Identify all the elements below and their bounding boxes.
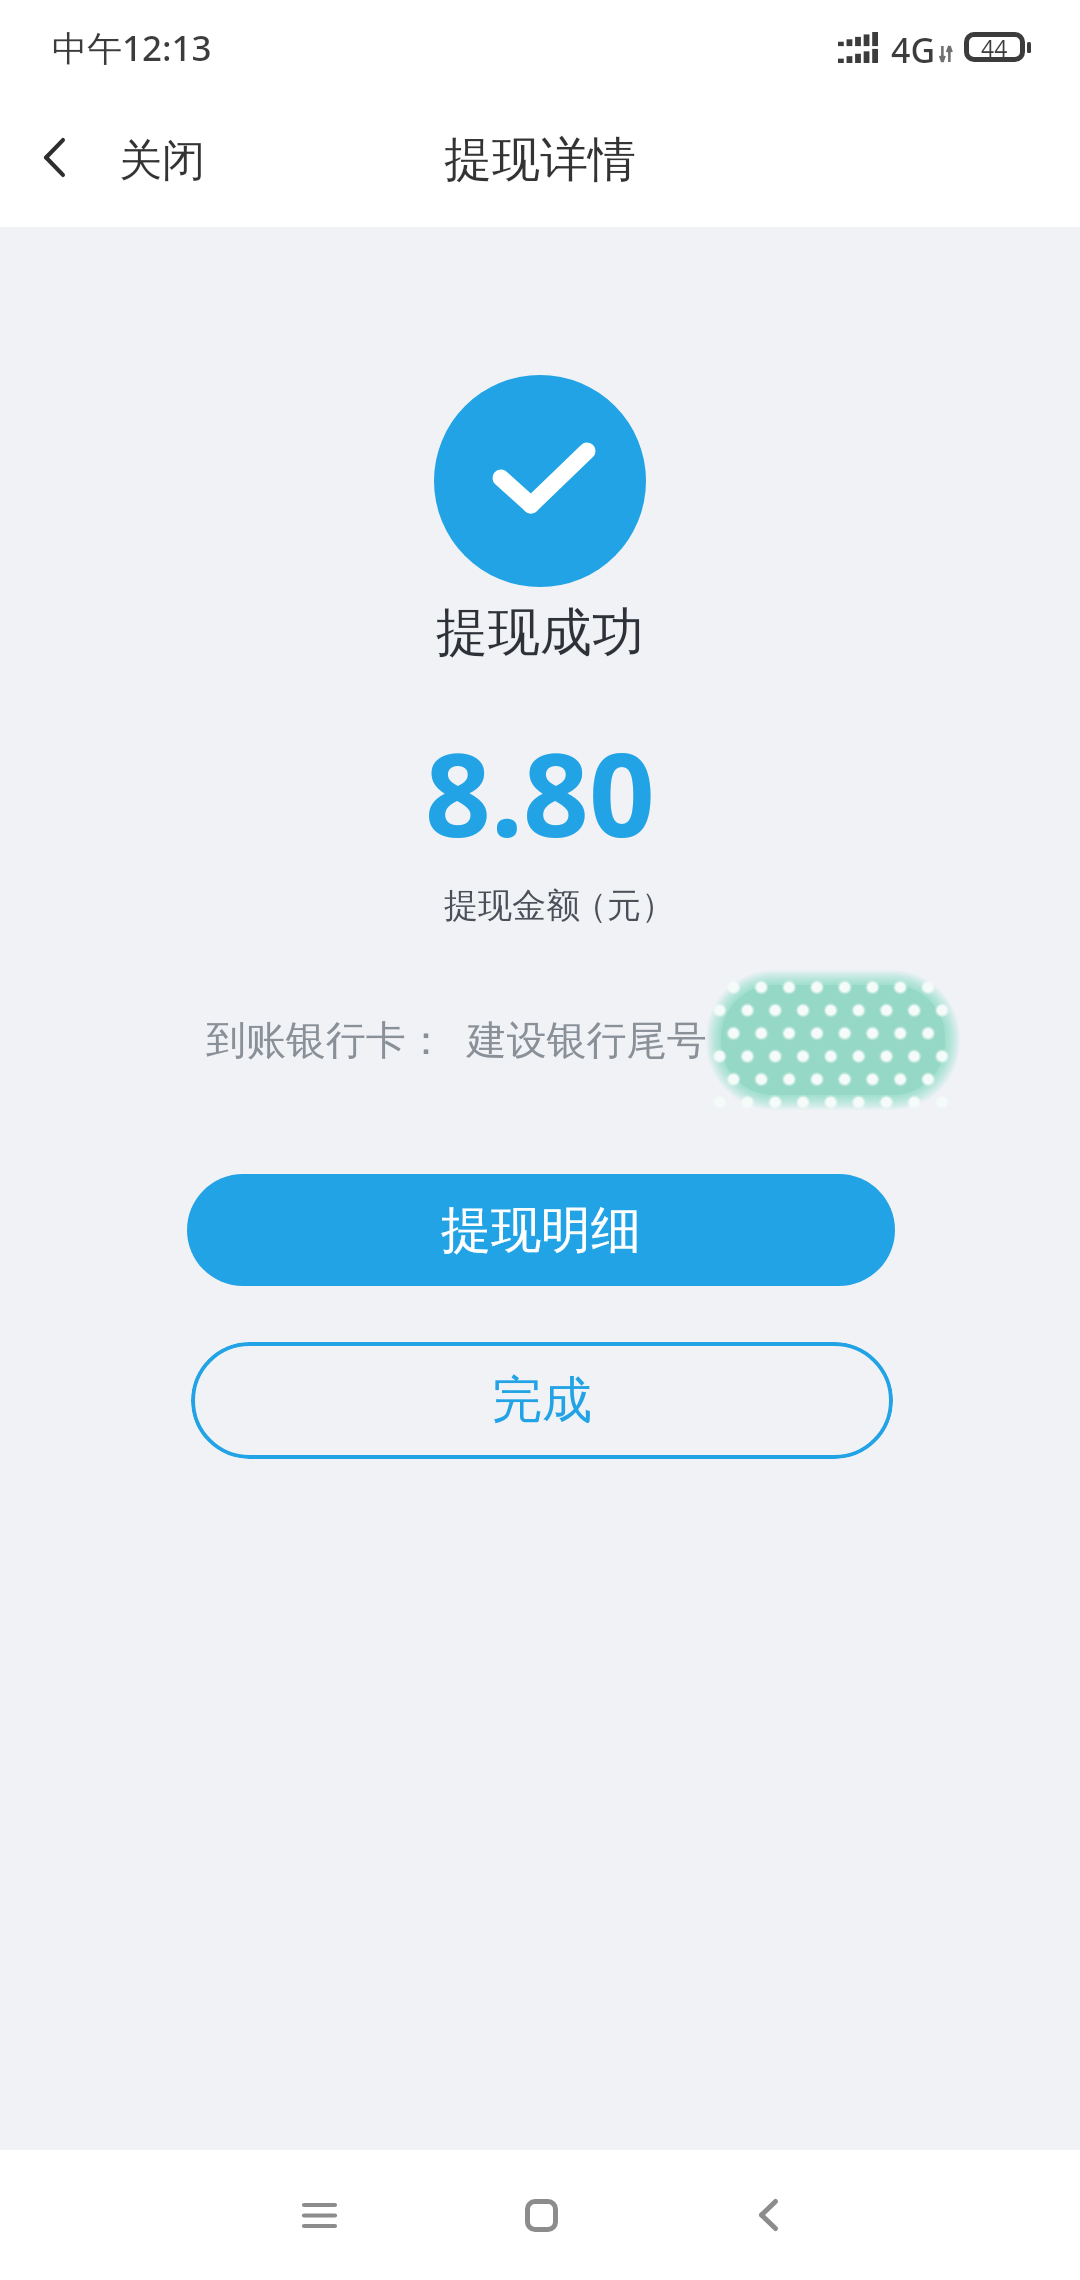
staticText: 关闭 (119, 134, 205, 188)
staticText: 8.80 (425, 714, 655, 871)
button[interactable]: 关闭 (0, 116, 229, 206)
button[interactable]: Home (481, 2155, 601, 2275)
button[interactable]: Recents (259, 2155, 379, 2275)
button[interactable]: Back (708, 2155, 828, 2275)
staticText: 提现成功 (436, 600, 644, 666)
staticText: 提现明细 (441, 1199, 641, 1262)
button[interactable]: 提现明细 (187, 1174, 895, 1286)
staticText: 44 (981, 32, 1008, 62)
staticText: 提现详情 (444, 130, 636, 190)
staticText: 4G (891, 27, 936, 73)
staticText: 完成 (492, 1369, 592, 1432)
staticText: 中午12:13 (52, 24, 212, 72)
staticText: 提现金额 (444, 884, 580, 927)
button[interactable]: 完成 (191, 1342, 893, 1459)
staticText: （元） (573, 884, 675, 927)
staticText: 到账银行卡： 建设银行尾号 (206, 1011, 707, 1066)
